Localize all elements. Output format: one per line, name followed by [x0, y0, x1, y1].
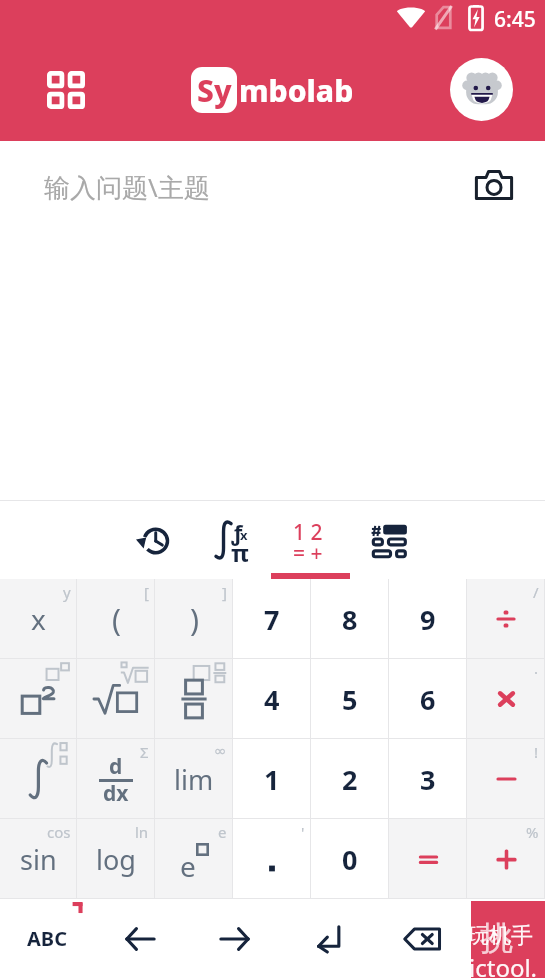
button[interactable]: [	[77, 579, 155, 659]
button[interactable]: y	[0, 579, 77, 659]
button[interactable]: ln	[77, 819, 155, 899]
button[interactable]: !	[467, 739, 545, 819]
button[interactable]: 6	[389, 659, 467, 739]
button[interactable]: 0	[311, 819, 389, 899]
staticText: 0	[342, 841, 358, 878]
button[interactable]: %	[467, 819, 545, 899]
staticText: ƒ	[231, 517, 243, 547]
staticText: x	[31, 600, 46, 638]
staticText: π	[231, 536, 249, 569]
staticText: dx	[103, 779, 129, 808]
staticText: ·	[534, 662, 539, 682]
staticText: 输入问题\主题	[44, 169, 210, 205]
staticText: 1 2	[293, 518, 323, 547]
button[interactable]: /	[467, 579, 545, 659]
staticText: x	[240, 526, 248, 544]
button[interactable]: 5	[311, 659, 389, 739]
button[interactable]: Menu	[37, 61, 95, 119]
staticText: 6	[420, 681, 436, 718]
button[interactable]: Move left	[93, 899, 187, 978]
button[interactable]: e	[155, 819, 233, 899]
staticText: ABC	[27, 925, 67, 952]
staticText: )	[190, 599, 199, 640]
button[interactable]: Profile	[450, 58, 513, 121]
staticText: (	[112, 599, 121, 640]
button[interactable]: ABC	[0, 899, 93, 978]
button[interactable]: ∞	[155, 739, 233, 819]
staticText: /	[533, 582, 539, 602]
staticText: [	[144, 582, 149, 602]
button[interactable]: 8	[311, 579, 389, 659]
staticText: ictool.cn	[471, 951, 543, 978]
staticText: sin	[20, 841, 57, 878]
staticText: Sy	[197, 70, 232, 111]
staticText: 6:45	[494, 5, 536, 34]
button[interactable]: ]	[155, 579, 233, 659]
button[interactable]: cos	[0, 819, 77, 899]
staticText: !	[534, 742, 539, 762]
button[interactable]: Enter	[281, 899, 375, 978]
staticText: log	[96, 841, 136, 878]
staticText: y	[63, 582, 71, 602]
staticText: lim	[174, 761, 214, 798]
button[interactable]: 1	[233, 739, 311, 819]
button[interactable]	[0, 659, 77, 739]
button[interactable]: 3	[389, 739, 467, 819]
staticText: '	[301, 822, 305, 842]
button[interactable]: 4	[233, 659, 311, 739]
staticText: Σ	[140, 742, 149, 762]
staticText: 2	[342, 761, 358, 798]
button[interactable]	[77, 659, 155, 739]
staticText: ∞	[214, 742, 227, 759]
staticText: mbolab	[239, 70, 354, 111]
staticText: 7	[264, 601, 280, 638]
button[interactable]: 7	[233, 579, 311, 659]
button[interactable]: Functions	[192, 501, 271, 579]
staticText: 4	[264, 681, 280, 718]
staticText: 5	[342, 681, 358, 718]
button[interactable]: '	[233, 819, 311, 899]
staticText: 9	[420, 601, 436, 638]
button[interactable]: Keyboard	[350, 501, 429, 579]
staticText: 3	[420, 761, 436, 798]
button[interactable]	[155, 659, 233, 739]
staticText: = +	[293, 539, 323, 568]
staticText: 8	[342, 601, 358, 638]
button[interactable]: 9	[389, 579, 467, 659]
button[interactable]: Move right	[187, 899, 281, 978]
button[interactable]: 2	[311, 739, 389, 819]
staticText: e	[218, 822, 227, 842]
staticText: 1	[264, 761, 280, 798]
button[interactable]: ·	[467, 659, 545, 739]
button[interactable]: Σ	[77, 739, 155, 819]
button[interactable]: Numbers	[271, 501, 350, 579]
staticText: ]	[222, 582, 227, 602]
staticText: %	[526, 822, 539, 842]
staticText: 挑	[480, 917, 513, 959]
button[interactable]	[0, 739, 77, 819]
staticText: d	[109, 752, 123, 781]
staticText: 玩机手	[471, 922, 533, 950]
staticText: ln	[135, 822, 149, 842]
button[interactable]: Backspace	[375, 899, 469, 978]
staticText: e	[180, 847, 196, 885]
button[interactable]	[389, 819, 467, 899]
button[interactable]: Camera	[470, 161, 518, 209]
staticText: cos	[47, 822, 71, 842]
button[interactable]: History	[113, 501, 192, 579]
